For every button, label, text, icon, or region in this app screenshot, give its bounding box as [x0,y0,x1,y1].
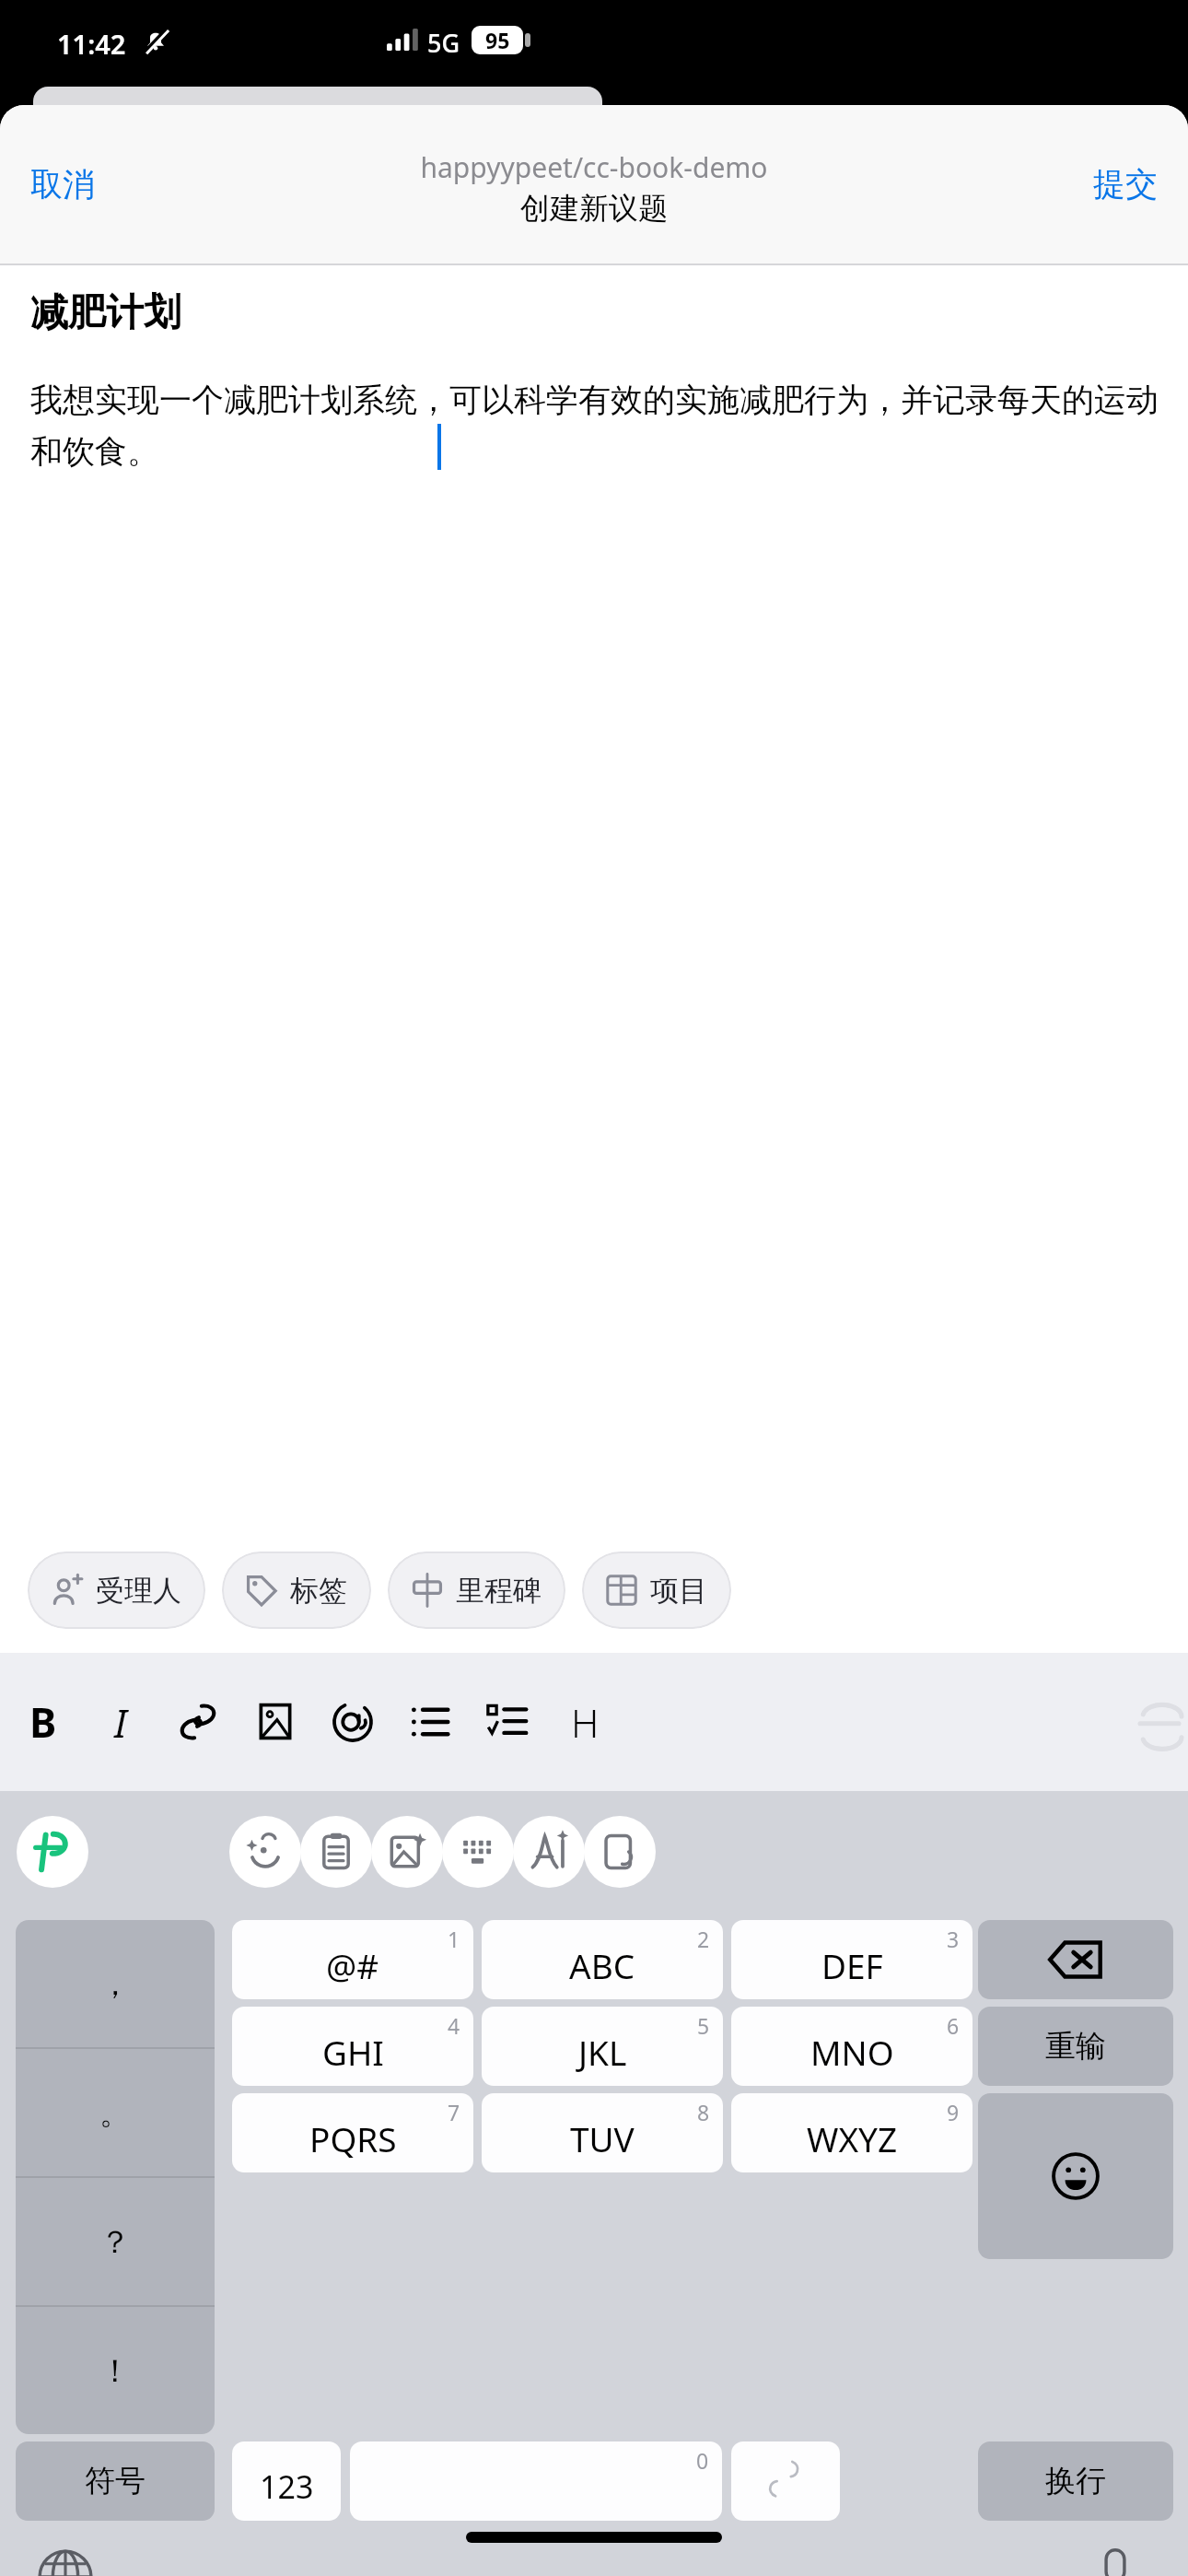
staticText: 符号 [85,2462,146,2500]
staticText: 95 [485,26,510,54]
button[interactable]: 受理人 [28,1551,205,1629]
button[interactable]: Link [163,1687,233,1757]
button[interactable]: Text style [513,1816,585,1888]
staticText: 4 [448,2011,460,2040]
staticText: 6 [947,2011,960,2040]
button[interactable]: Bullet list [395,1687,465,1757]
staticText: 标签 [290,1573,347,1609]
staticText: 2 [697,1925,710,1953]
button[interactable]: Heading [550,1687,620,1757]
button[interactable]: ！ [16,2307,215,2434]
button[interactable]: 1 [232,1920,473,1999]
button[interactable]: 项目 [582,1551,731,1629]
button[interactable]: Emoji keyboard [978,2093,1173,2259]
button[interactable]: 3 [731,1920,973,1999]
staticText: GHI [322,2029,384,2075]
button[interactable]: 换行 [978,2441,1173,2521]
button[interactable]: 4 [232,2007,473,2086]
button[interactable]: Emoji [229,1816,301,1888]
staticText: 提交 [1093,164,1158,205]
staticText: 11:42 [57,26,126,62]
staticText: 9 [947,2098,960,2126]
button[interactable]: Bold [8,1687,78,1757]
button[interactable]: 9 [731,2093,973,2172]
button[interactable]: Keyboard layout [442,1816,514,1888]
button[interactable]: 2 [482,1920,723,1999]
button[interactable]: Switch language [37,2548,94,2576]
button[interactable]: 。 [16,2049,215,2176]
staticText: 里程碑 [456,1573,542,1609]
button[interactable]: Mention [318,1687,388,1757]
staticText: 3 [947,1925,960,1953]
button[interactable]: 8 [482,2093,723,2172]
staticText: B [29,1694,57,1750]
staticText: 减肥计划 [30,289,181,337]
button[interactable]: 0 [350,2441,722,2521]
staticText: 创建新议题 [520,190,668,227]
staticText: DEF [821,1942,883,1988]
staticText: 123 [260,2465,314,2508]
staticText: 重输 [1045,2027,1106,2066]
staticText: 受理人 [96,1573,181,1609]
button[interactable]: 符号 [16,2441,215,2521]
staticText: 0 [696,2446,709,2475]
button[interactable]: Backspace [978,1920,1173,1999]
staticText: WXYZ [807,2115,898,2161]
button[interactable]: 标签 [222,1551,371,1629]
button[interactable]: Italic [86,1687,156,1757]
button[interactable]: 重输 [978,2007,1173,2086]
staticText: MNO [810,2029,894,2075]
staticText: ！ [99,2351,131,2391]
button[interactable]: Image [240,1687,310,1757]
button[interactable]: Input method [17,1816,88,1888]
button[interactable]: ， [16,1920,215,2047]
staticText: TUV [570,2115,635,2161]
button[interactable]: Task list [472,1687,542,1757]
button[interactable]: 里程碑 [388,1551,565,1629]
button[interactable]: 提交 [1088,157,1163,212]
staticText: 1 [448,1925,460,1953]
staticText: 取消 [30,164,95,205]
staticText: JKL [578,2029,627,2075]
button[interactable]: 123 [232,2441,341,2521]
staticText: 换行 [1045,2462,1106,2500]
staticText: I [114,1696,127,1749]
button[interactable]: Voice input [1087,2547,1144,2576]
staticText: 。 [99,2093,131,2133]
button[interactable]: 6 [731,2007,973,2086]
staticText: 我想实现一个减肥计划系统，可以科学有效的实施减肥行为，并记录每天的运动和饮食。 [30,380,1168,472]
button[interactable] [731,2441,840,2521]
button[interactable]: ？ [16,2178,215,2305]
button[interactable]: More formatting [1140,1697,1188,1752]
button[interactable]: Photos [371,1816,443,1888]
staticText: happyypeet/cc-book-demo [420,148,768,186]
button[interactable]: Handwriting [584,1816,656,1888]
staticText: 5 [697,2011,710,2040]
staticText: 8 [697,2098,710,2126]
staticText: 5G [427,26,460,60]
staticText: ， [99,1964,131,2004]
staticText: 项目 [650,1573,707,1609]
staticText: H [571,1696,600,1749]
button[interactable]: 7 [232,2093,473,2172]
button[interactable]: 取消 [25,157,100,212]
staticText: ABC [569,1942,635,1988]
staticText: 7 [448,2098,460,2126]
staticText: @# [326,1942,379,1988]
button[interactable]: 5 [482,2007,723,2086]
staticText: ？ [99,2222,131,2262]
button[interactable]: Clipboard [300,1816,372,1888]
staticText: PQRS [309,2115,397,2161]
